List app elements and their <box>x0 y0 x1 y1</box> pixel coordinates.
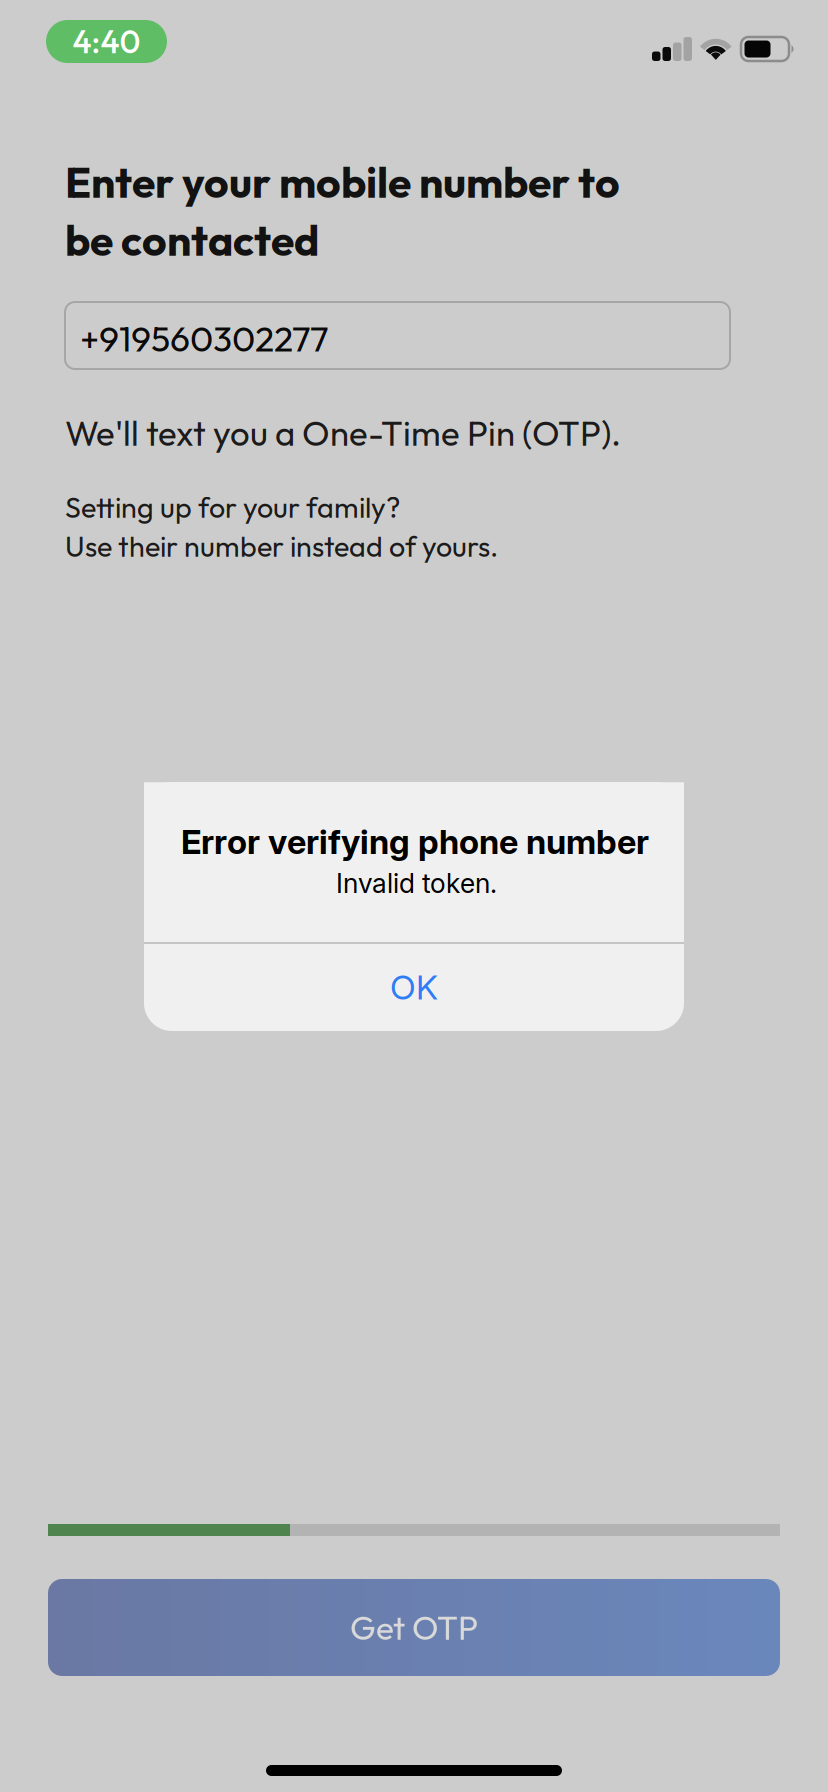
staticText: Invalid token. <box>336 867 497 899</box>
staticText: be contacted <box>65 213 319 267</box>
button[interactable]: Get OTP <box>48 1579 780 1676</box>
staticText: Get OTP <box>350 1606 478 1648</box>
staticText: Enter your mobile number to <box>65 155 620 209</box>
staticText: Use their number instead of yours. <box>65 528 498 564</box>
staticText: Error verifying phone number <box>181 821 649 862</box>
staticText: We'll text you a One-Time Pin (OTP). <box>65 411 621 455</box>
button[interactable]: OK <box>144 944 684 1031</box>
staticText: 4:40 <box>72 21 140 62</box>
staticText: OK <box>390 967 438 1008</box>
staticText: Setting up for your family? <box>65 489 400 525</box>
staticText: +919560302277 <box>80 316 329 361</box>
